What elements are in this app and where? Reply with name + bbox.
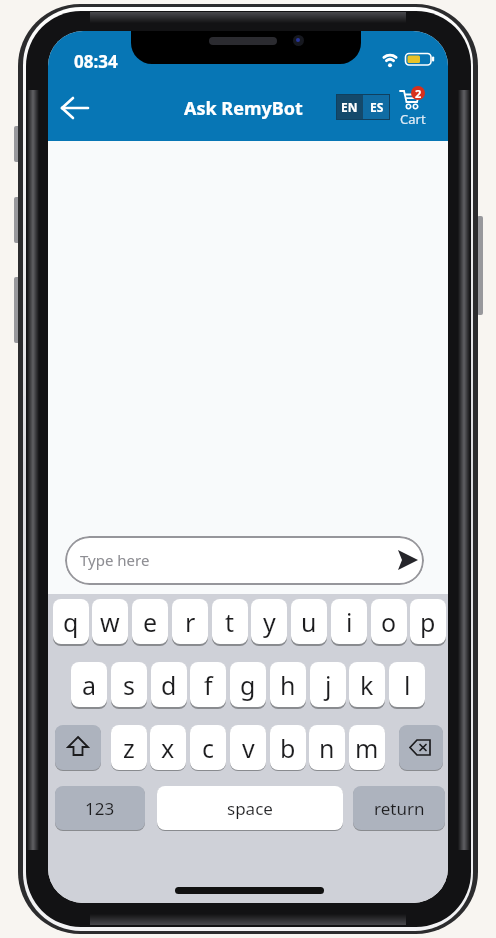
button[interactable]: j <box>310 662 346 707</box>
button[interactable]: g <box>230 662 266 707</box>
staticText: j <box>325 668 332 702</box>
staticText: ES <box>370 99 384 115</box>
staticText: 123 <box>85 797 115 820</box>
staticText: z <box>123 731 135 765</box>
staticText: s <box>123 668 135 702</box>
button[interactable]: 123 <box>55 786 145 830</box>
staticText: r <box>185 605 196 639</box>
staticText: u <box>301 605 317 639</box>
staticText: 2 <box>415 86 422 100</box>
staticText: t <box>225 605 235 639</box>
button[interactable]: p <box>410 599 446 644</box>
button[interactable]: k <box>349 662 385 707</box>
staticText: g <box>240 668 256 702</box>
button[interactable]: a <box>71 662 107 707</box>
button[interactable]: q <box>53 599 89 644</box>
staticText: m <box>355 731 379 765</box>
staticText: space <box>227 797 273 820</box>
staticText: f <box>204 668 213 702</box>
staticText: x <box>161 731 175 765</box>
button[interactable]: x <box>150 725 186 770</box>
button[interactable]: n <box>309 725 345 770</box>
button[interactable]: c <box>190 725 226 770</box>
staticText: p <box>420 605 436 639</box>
button[interactable]: d <box>151 662 187 707</box>
staticText: o <box>381 605 397 639</box>
staticText: w <box>100 605 120 639</box>
button[interactable]: t <box>212 599 248 644</box>
button[interactable]: Type here <box>65 536 424 585</box>
staticText: q <box>63 605 79 639</box>
staticText: y <box>263 605 276 639</box>
button[interactable]: h <box>270 662 306 707</box>
staticText: 08:34 <box>74 50 118 73</box>
button[interactable]: l <box>389 662 425 707</box>
staticText: c <box>202 731 215 765</box>
staticText: EN <box>341 99 358 115</box>
staticText: d <box>161 668 177 702</box>
button[interactable] <box>55 725 101 770</box>
button[interactable]: u <box>291 599 327 644</box>
staticText: b <box>280 731 296 765</box>
button[interactable]: m <box>349 725 385 770</box>
button[interactable]: EN <box>336 94 363 120</box>
button[interactable]: i <box>331 599 367 644</box>
staticText: h <box>280 668 296 702</box>
button[interactable]: f <box>190 662 226 707</box>
staticText: Cart <box>400 110 426 126</box>
button[interactable] <box>54 95 94 121</box>
button[interactable]: return <box>353 786 445 830</box>
staticText: Type here <box>80 550 150 570</box>
staticText: n <box>319 731 335 765</box>
button[interactable]: b <box>270 725 306 770</box>
button[interactable] <box>399 725 443 770</box>
button[interactable]: z <box>111 725 147 770</box>
button[interactable]: y <box>251 599 287 644</box>
button[interactable]: r <box>172 599 208 644</box>
button[interactable]: space <box>157 786 343 830</box>
staticText: l <box>404 668 411 702</box>
button[interactable]: s <box>111 662 147 707</box>
staticText: k <box>360 668 374 702</box>
staticText: e <box>143 605 158 639</box>
staticText: return <box>374 797 425 820</box>
button[interactable]: e <box>132 599 168 644</box>
staticText: Ask RemyBot <box>184 96 303 121</box>
staticText: i <box>346 605 353 639</box>
button[interactable]: o <box>371 599 407 644</box>
button[interactable]: w <box>92 599 128 644</box>
button[interactable]: ES <box>363 94 390 120</box>
staticText: v <box>242 731 255 765</box>
staticText: a <box>82 668 97 702</box>
button[interactable]: v <box>230 725 266 770</box>
button[interactable]: 2 <box>393 83 433 127</box>
